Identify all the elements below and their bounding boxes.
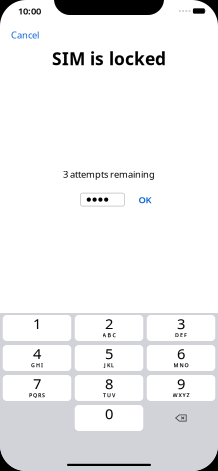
staticText: 10:00 (18, 5, 41, 17)
staticText: 2 (105, 314, 113, 333)
button[interactable]: 1 (3, 315, 71, 341)
staticText: Cancel (11, 29, 39, 41)
button[interactable]: 6 (147, 345, 215, 371)
button[interactable]: 8 (75, 375, 143, 401)
button[interactable]: 0 (75, 405, 143, 431)
staticText: 3 attempts remaining (63, 168, 155, 180)
button[interactable]: OK (124, 190, 151, 209)
staticText: P Q R S (29, 392, 45, 399)
staticText: D E F (175, 332, 187, 339)
staticText: 7 (33, 374, 41, 393)
staticText: SIM is locked (52, 47, 166, 70)
button[interactable]: 4 (3, 345, 71, 371)
staticText: OK (138, 193, 151, 206)
staticText: 9 (177, 374, 185, 393)
staticText: 0 (105, 404, 113, 423)
button[interactable]: 3 (147, 315, 215, 341)
staticText: A B C (102, 332, 115, 339)
button[interactable]: 5 (75, 345, 143, 371)
staticText: 6 (177, 344, 185, 363)
staticText: 3 (177, 314, 185, 333)
staticText: 8 (105, 374, 113, 393)
button[interactable]: Cancel (0, 19, 39, 45)
button[interactable]: 7 (3, 375, 71, 401)
staticText: 5 (105, 344, 113, 363)
staticText: W X Y Z (172, 392, 189, 399)
staticText: T U V (103, 392, 115, 399)
staticText: 4 (33, 344, 41, 363)
staticText: 1 (33, 314, 41, 333)
button[interactable]: 9 (147, 375, 215, 401)
staticText: J K L (104, 362, 114, 369)
button[interactable]: 2 (75, 315, 143, 341)
button[interactable]: Delete (147, 405, 215, 431)
staticText: M N O (173, 362, 188, 369)
staticText: G H I (31, 362, 43, 369)
